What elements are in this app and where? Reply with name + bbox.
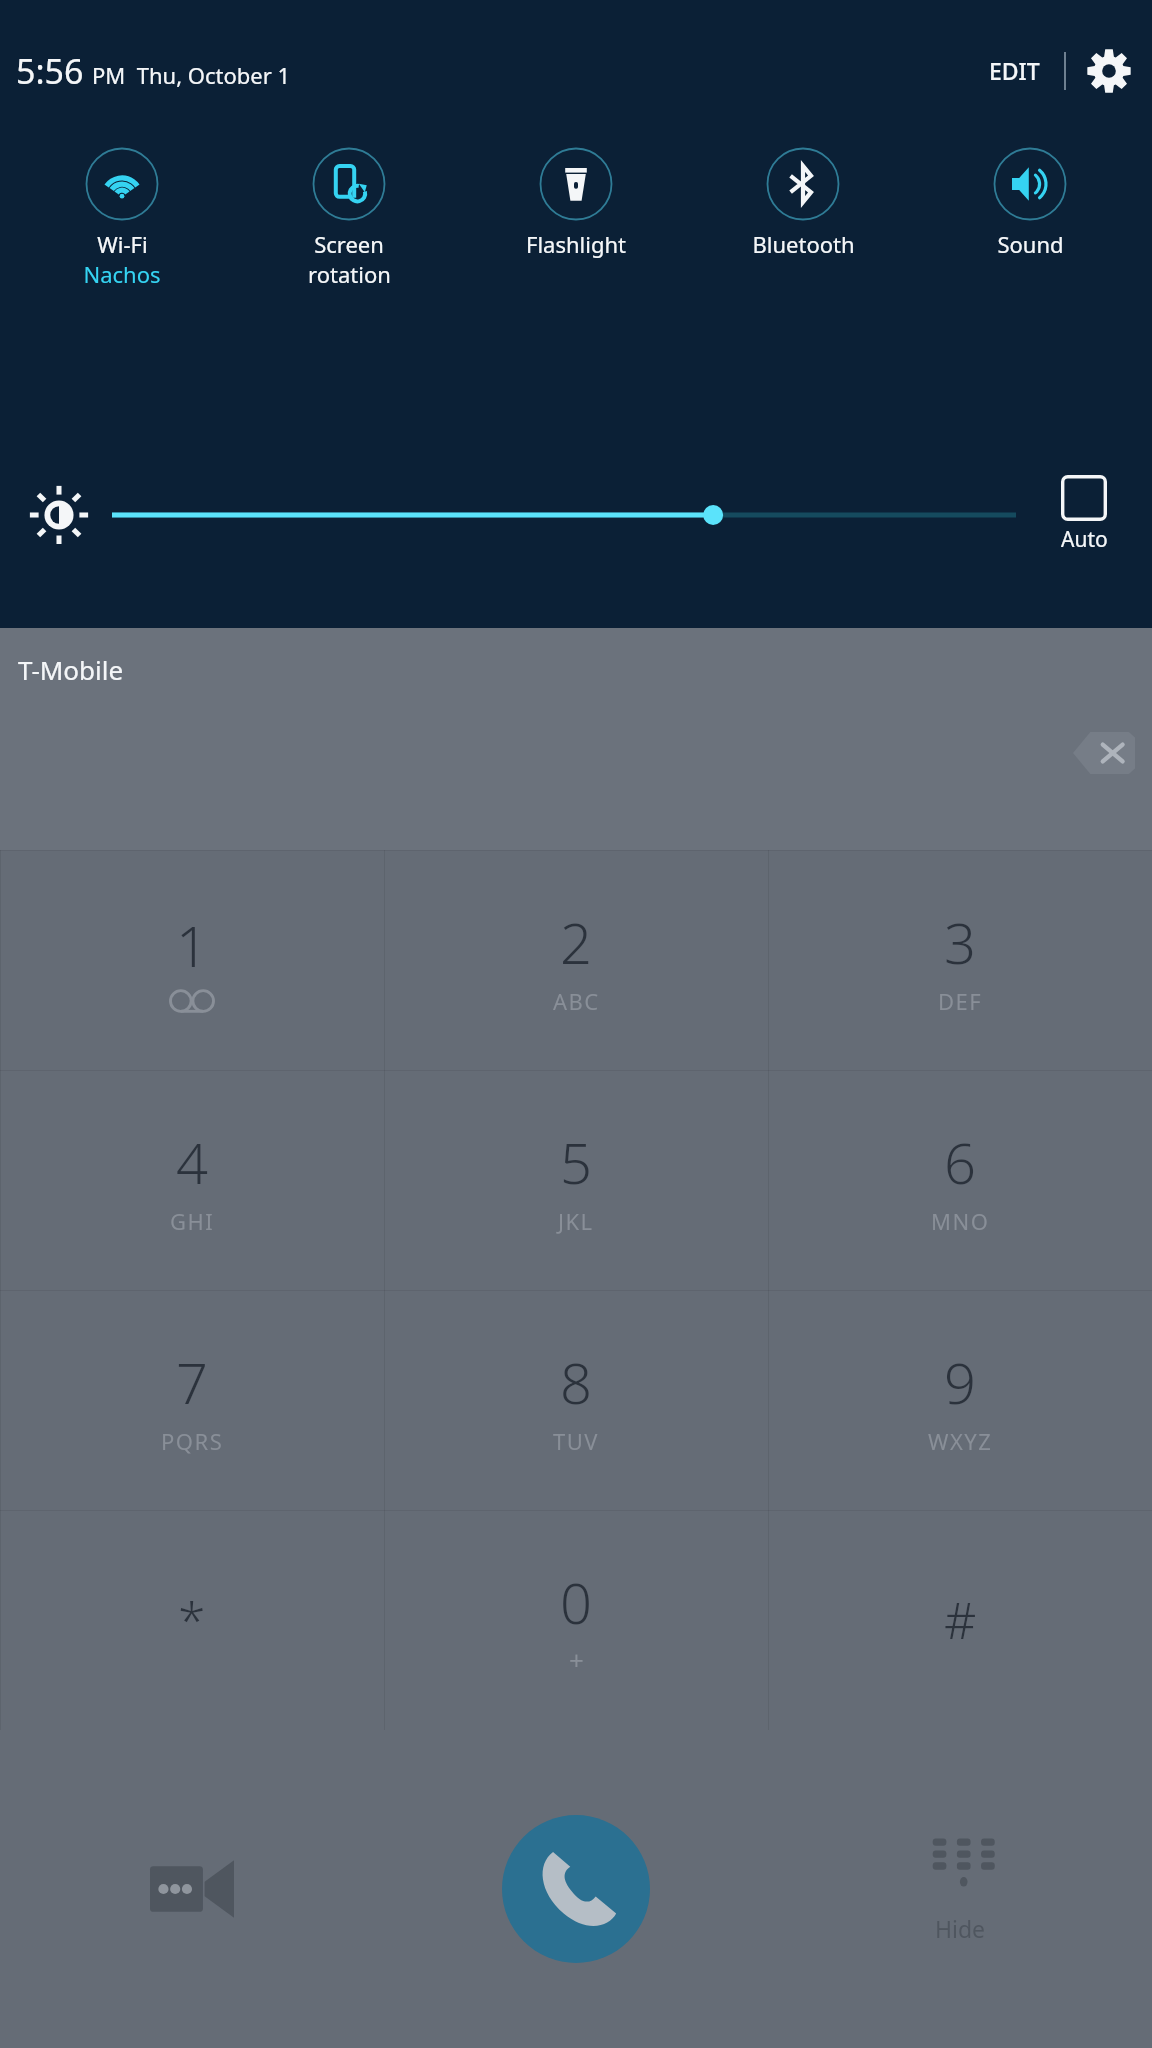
button[interactable] (112, 485, 1016, 545)
button[interactable]: 7 (0, 1290, 384, 1510)
staticText: Hide (935, 1913, 986, 1944)
staticText: * (178, 1586, 206, 1654)
button[interactable]: Video call (0, 1730, 384, 2048)
staticText: DEF (938, 986, 983, 1016)
staticText: Sound (997, 229, 1064, 259)
staticText: Flashlight (526, 229, 626, 259)
button[interactable]: Brightness (24, 480, 94, 550)
staticText: 4 (176, 1124, 208, 1200)
button[interactable]: EDIT (981, 47, 1048, 94)
staticText: WXYZ (928, 1426, 993, 1456)
button[interactable]: Auto (1036, 471, 1132, 558)
button[interactable]: 5 (384, 1070, 768, 1290)
button[interactable]: Backspace (1056, 721, 1152, 785)
staticText: 0 (560, 1564, 592, 1640)
staticText: Nachos (83, 259, 161, 289)
button[interactable]: 6 (768, 1070, 1152, 1290)
staticText: 3 (944, 904, 976, 980)
staticText: 9 (944, 1344, 976, 1420)
button[interactable]: Wi-Fi (17, 141, 227, 289)
staticText: ABC (553, 986, 600, 1016)
staticText: 5 (560, 1124, 592, 1200)
staticText: 2 (560, 904, 592, 980)
button[interactable]: Settings (1082, 44, 1136, 98)
staticText: 6 (944, 1124, 976, 1200)
staticText: Auto (1061, 525, 1108, 554)
staticText: Wi-Fi (97, 229, 148, 259)
button[interactable]: 3 (768, 850, 1152, 1070)
staticText: Bluetooth (752, 229, 855, 259)
button[interactable]: 1 (0, 850, 384, 1070)
button[interactable]: Screen (244, 141, 454, 289)
button[interactable]: 8 (384, 1290, 768, 1510)
staticText: T-Mobile (18, 652, 124, 687)
button[interactable]: Flashlight (471, 141, 681, 259)
staticText: 8 (560, 1344, 592, 1420)
staticText: 1 (176, 907, 208, 983)
staticText: PQRS (161, 1426, 224, 1456)
staticText: EDIT (989, 55, 1040, 86)
staticText: MNO (931, 1206, 990, 1236)
staticText: # (944, 1586, 977, 1654)
button[interactable]: Bluetooth (698, 141, 908, 259)
staticText: rotation (308, 259, 391, 289)
button[interactable]: Sound (925, 141, 1135, 259)
staticText: 7 (176, 1344, 208, 1420)
button[interactable]: 0 (384, 1510, 768, 1730)
button[interactable]: 4 (0, 1070, 384, 1290)
staticText: Screen (314, 229, 384, 259)
staticText: GHI (170, 1206, 215, 1236)
button[interactable]: 2 (384, 850, 768, 1070)
staticText: TUV (553, 1426, 600, 1456)
staticText: 5:56 (16, 48, 84, 94)
button[interactable]: # (768, 1510, 1152, 1730)
button[interactable]: 9 (768, 1290, 1152, 1510)
staticText: + (569, 1642, 584, 1677)
staticText: JKL (558, 1206, 594, 1236)
staticText: PM Thu, October 1 (92, 60, 291, 90)
button[interactable]: Call (502, 1815, 650, 1963)
